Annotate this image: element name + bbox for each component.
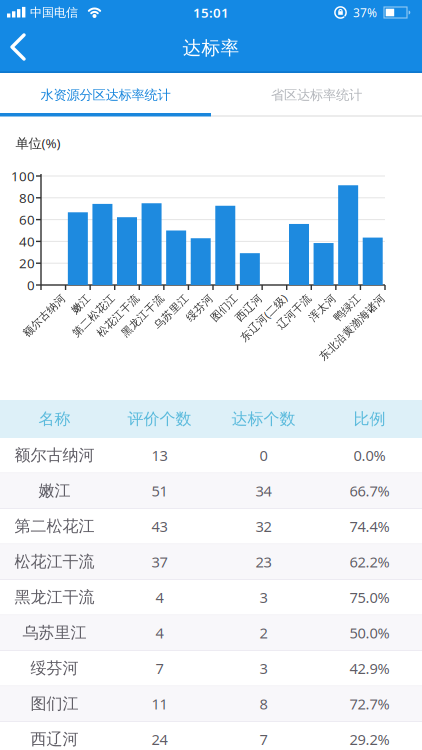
staticText: 黑龙江干流 [14,587,94,607]
staticText: 32 [255,516,271,536]
staticText: 13 [151,445,167,465]
staticText: 3 [259,587,267,607]
staticText: 15:01 [193,4,229,21]
staticText: 4 [155,587,163,607]
staticText: 绥芬河 [30,658,78,678]
staticText: 29.2% [349,729,389,749]
staticText: 75.0% [349,587,389,607]
staticText: 鸭绿江 [321,291,354,305]
staticText: 43 [151,516,167,536]
staticText: 达标个数 [231,409,295,429]
staticText: 名称 [38,409,70,429]
staticText: 第二松花江 [53,291,108,305]
button[interactable]: 省区达标率统计 [211,75,422,115]
staticText: 0.0% [353,445,385,465]
staticText: 嫩江 [38,481,70,501]
staticText: 7 [259,729,267,749]
staticText: 额尔古纳河 [4,291,59,305]
staticText: 72.7% [349,694,389,713]
staticText: 省区达标率统计 [271,87,362,103]
staticText: 水资源分区达标率统计 [40,87,170,103]
staticText: 8 [259,694,267,713]
staticText: 0 [259,445,267,465]
staticText: 37 [151,552,167,571]
staticText: 74.4% [349,516,389,536]
staticText: 7 [155,658,163,678]
staticText: 乌苏里江 [138,291,182,305]
staticText: 60 [19,211,35,228]
staticText: 第二松花江 [14,516,94,536]
staticText: 图们江 [198,291,231,305]
staticText: 37% [353,4,377,20]
staticText: 62.2% [349,552,389,571]
staticText: 23 [255,552,271,571]
staticText: 66.7% [349,481,389,500]
staticText: 比例 [353,409,385,429]
staticText: 东北沿黄渤海诸河 [291,291,379,305]
staticText: 42.9% [349,658,389,678]
staticText: 20 [19,254,35,272]
staticText: 34 [255,481,271,500]
staticText: 乌苏里江 [22,623,86,643]
staticText: 西辽河 [30,729,78,749]
staticText: 西辽河 [223,291,256,305]
staticText: 40 [19,232,35,250]
staticText: 2 [259,623,267,642]
staticText: 额尔古纳河 [14,445,94,465]
staticText: 评价个数 [127,409,191,429]
staticText: 11 [151,694,167,713]
staticText: 单位(%) [15,134,60,152]
staticText: 绥芬河 [174,291,207,305]
staticText: 嫩江 [62,291,84,305]
staticText: 4 [155,623,163,642]
staticText: 浑太河 [297,291,330,305]
staticText: 0 [27,276,35,294]
staticText: 3 [259,658,267,678]
staticText: 松花江干流 [78,291,133,305]
staticText: 图们江 [30,694,78,714]
staticText: 100 [11,167,35,185]
staticText: 黑龙江干流 [103,291,158,305]
staticText: 东辽河(二级) [219,291,280,305]
staticText: 51 [151,481,167,500]
staticText: 中国电信 [30,5,78,20]
staticText: 80 [19,189,35,207]
button[interactable]: 水资源分区达标率统计 [0,75,211,115]
staticText: 松花江干流 [14,552,94,572]
staticText: 50.0% [349,623,389,642]
staticText: 24 [151,729,167,749]
button[interactable]: Back [0,26,44,68]
staticText: 达标率 [182,36,239,59]
staticText: 辽河干流 [261,291,305,305]
